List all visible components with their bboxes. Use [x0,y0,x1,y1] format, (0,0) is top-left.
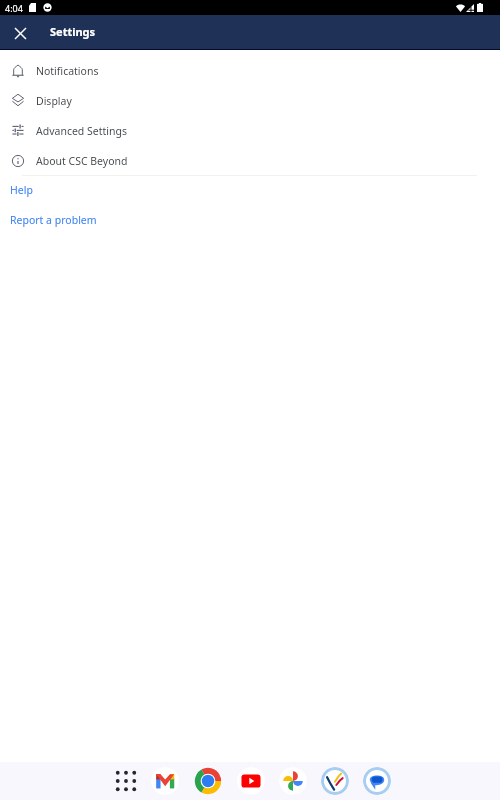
button[interactable]: Notifications [0,56,500,86]
button[interactable]: About CSC Beyond [0,146,500,176]
button[interactable]: All apps [112,767,140,795]
staticText: Help [10,183,33,197]
staticText: Display [36,94,72,108]
staticText: Report a problem [10,213,97,227]
button[interactable]: Messages [363,767,391,795]
button[interactable]: Chrome [194,767,222,795]
button[interactable]: Close [8,21,32,45]
button[interactable]: Clock [321,767,349,795]
staticText: Notifications [36,64,99,78]
button[interactable]: Help [0,175,500,205]
staticText: Settings [50,24,96,39]
staticText: About CSC Beyond [36,154,128,168]
button[interactable]: Photos [279,767,307,795]
button[interactable]: Report a problem [0,205,500,235]
button[interactable]: Advanced Settings [0,116,500,146]
staticText: Advanced Settings [36,124,127,138]
button[interactable]: YouTube [237,767,265,795]
button[interactable]: Display [0,86,500,116]
staticText: 4:04 [5,2,23,14]
button[interactable]: Gmail [151,767,179,795]
